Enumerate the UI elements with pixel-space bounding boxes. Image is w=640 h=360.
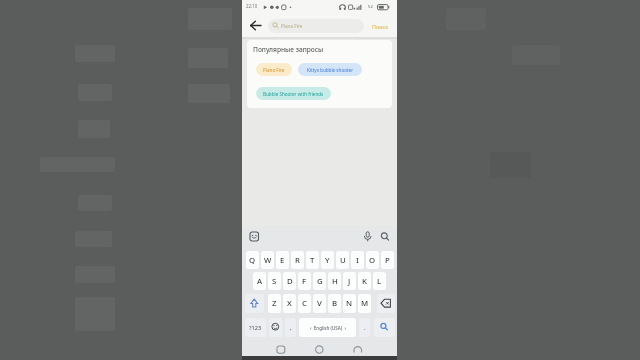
staticText: J: [348, 276, 351, 287]
staticText: Piano Fire: [281, 23, 303, 29]
staticText: Piano Fire: [263, 67, 285, 73]
staticText: K: [362, 276, 367, 287]
button[interactable]: Piano Fire: [256, 63, 292, 76]
button[interactable]: Поиск: [366, 20, 394, 32]
staticText: W: [264, 255, 272, 266]
staticText: G: [317, 276, 323, 287]
staticText: H: [332, 276, 338, 287]
button[interactable]: ‹ English (USA) ›: [299, 318, 356, 337]
staticText: C: [302, 298, 307, 309]
button[interactable]: [377, 294, 395, 313]
staticText: Bubble Shooter with friends: [263, 91, 324, 97]
button[interactable]: L: [373, 272, 386, 290]
staticText: E: [280, 255, 285, 266]
button[interactable]: B: [328, 294, 341, 313]
staticText: Y: [325, 255, 330, 266]
staticText: S: [272, 276, 277, 287]
staticText: T: [310, 255, 315, 266]
button[interactable]: K: [358, 272, 371, 290]
button[interactable]: [374, 318, 395, 337]
staticText: D: [287, 276, 293, 287]
button[interactable]: [347, 342, 369, 357]
staticText: U: [340, 255, 346, 266]
button[interactable]: S: [268, 272, 281, 290]
button[interactable]: F: [298, 272, 311, 290]
staticText: Z: [272, 298, 277, 309]
button[interactable]: E: [276, 251, 289, 269]
button[interactable]: Y: [321, 251, 334, 269]
button[interactable]: J: [343, 272, 356, 290]
staticText: 52: [368, 4, 373, 10]
staticText: R: [295, 255, 300, 266]
button[interactable]: P: [381, 251, 394, 269]
button[interactable]: N: [343, 294, 356, 313]
staticText: O: [369, 255, 376, 266]
button[interactable]: Kittys bubble shooter: [298, 63, 362, 76]
button[interactable]: .: [359, 318, 370, 337]
button[interactable]: D: [283, 272, 296, 290]
button[interactable]: U: [336, 251, 349, 269]
button[interactable]: X: [283, 294, 296, 313]
button[interactable]: V: [313, 294, 326, 313]
button[interactable]: G: [313, 272, 326, 290]
staticText: Поиск: [372, 23, 389, 30]
staticText: Популярные запросы: [253, 45, 324, 54]
staticText: P: [385, 255, 390, 266]
staticText: L: [377, 276, 382, 287]
button[interactable]: Bubble Shooter with friends: [256, 87, 331, 100]
button[interactable]: [308, 342, 330, 357]
staticText: A: [257, 276, 263, 287]
staticText: X: [287, 298, 292, 309]
staticText: N: [346, 298, 353, 309]
button[interactable]: Q: [246, 251, 259, 269]
button[interactable]: O: [366, 251, 379, 269]
staticText: .: [364, 324, 366, 332]
button[interactable]: [245, 294, 264, 313]
staticText: Kittys bubble shooter: [307, 67, 354, 73]
button[interactable]: [269, 318, 282, 337]
button[interactable]: W: [261, 251, 274, 269]
button[interactable]: I: [351, 251, 364, 269]
staticText: ?123: [249, 324, 262, 332]
staticText: F: [302, 276, 307, 287]
button[interactable]: C: [298, 294, 311, 313]
button[interactable]: H: [328, 272, 341, 290]
button[interactable]: ,: [285, 318, 296, 337]
staticText: M: [361, 298, 369, 309]
staticText: V: [317, 298, 322, 309]
staticText: I: [356, 255, 359, 266]
button[interactable]: [244, 17, 264, 34]
staticText: ,: [290, 324, 292, 332]
staticText: Q: [249, 255, 256, 266]
staticText: B: [332, 298, 338, 309]
staticText: 22:10: [246, 3, 258, 9]
button[interactable]: ?123: [245, 318, 266, 337]
staticText: ‹ English (USA) ›: [310, 325, 346, 331]
button[interactable]: A: [253, 272, 266, 290]
button[interactable]: Z: [268, 294, 281, 313]
button[interactable]: T: [306, 251, 319, 269]
button[interactable]: R: [291, 251, 304, 269]
button[interactable]: [270, 342, 292, 357]
button[interactable]: Piano Fire: [268, 19, 364, 33]
button[interactable]: M: [358, 294, 371, 313]
